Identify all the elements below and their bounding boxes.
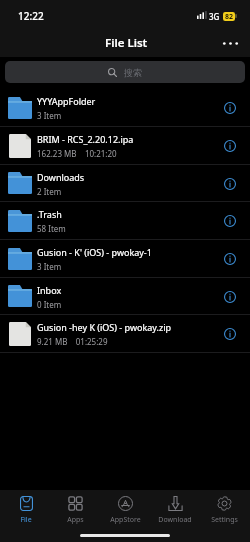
staticText: 2 Item bbox=[37, 186, 62, 197]
staticText: .Trash bbox=[37, 208, 62, 220]
staticText: Settings bbox=[211, 515, 238, 525]
staticText: Downloads bbox=[37, 171, 85, 183]
staticText: Gusion - K' (iOS) - pwokay-1 bbox=[37, 246, 152, 258]
button[interactable]: Info bbox=[219, 135, 241, 157]
staticText: 3 Item bbox=[37, 110, 62, 121]
staticText: Download bbox=[158, 515, 192, 525]
staticText: File bbox=[20, 515, 32, 525]
staticText: 3 Item bbox=[37, 261, 62, 272]
staticText: 9.21 MB 01:25:29 bbox=[37, 336, 108, 347]
staticText: 搜索 bbox=[124, 67, 142, 78]
button[interactable]: AppStore bbox=[101, 490, 149, 528]
button[interactable]: Info bbox=[219, 323, 241, 345]
button[interactable]: Settings bbox=[200, 490, 248, 528]
button[interactable]: Info bbox=[219, 97, 241, 119]
staticText: 3G bbox=[209, 11, 220, 22]
button[interactable]: .Trash bbox=[0, 202, 250, 240]
button[interactable]: Gusion -hey K (iOS) - pwokay.zip bbox=[0, 315, 250, 353]
button[interactable]: More options bbox=[210, 29, 250, 57]
staticText: 12:22 bbox=[18, 9, 44, 23]
button[interactable]: Info bbox=[219, 173, 241, 195]
staticText: BRIM - RCS_2.20.12.ipa bbox=[37, 133, 134, 145]
staticText: Apps bbox=[67, 515, 84, 525]
staticText: Gusion -hey K (iOS) - pwokay.zip bbox=[37, 321, 172, 333]
button[interactable]: 搜索 bbox=[5, 61, 245, 83]
staticText: 0 Item bbox=[37, 299, 62, 310]
button[interactable]: YYYAppFolder bbox=[0, 89, 250, 127]
staticText: 162.23 MB 10:21:20 bbox=[37, 148, 117, 159]
staticText: YYYAppFolder bbox=[37, 95, 96, 107]
button[interactable]: Download bbox=[151, 490, 199, 528]
staticText: 58 Item bbox=[37, 223, 66, 234]
button[interactable]: Info bbox=[219, 210, 241, 232]
button[interactable]: File bbox=[2, 490, 50, 528]
button[interactable]: Apps bbox=[51, 490, 99, 528]
button[interactable]: Info bbox=[219, 286, 241, 308]
button[interactable]: Downloads bbox=[0, 165, 250, 202]
button[interactable]: BRIM - RCS_2.20.12.ipa bbox=[0, 127, 250, 165]
button[interactable]: Info bbox=[219, 248, 241, 270]
staticText: 82 bbox=[225, 12, 234, 21]
staticText: Inbox bbox=[37, 284, 62, 296]
button[interactable]: Inbox bbox=[0, 278, 250, 315]
staticText: AppStore bbox=[110, 515, 141, 525]
button[interactable]: Gusion - K' (iOS) - pwokay-1 bbox=[0, 240, 250, 278]
staticText: File List bbox=[105, 35, 148, 51]
